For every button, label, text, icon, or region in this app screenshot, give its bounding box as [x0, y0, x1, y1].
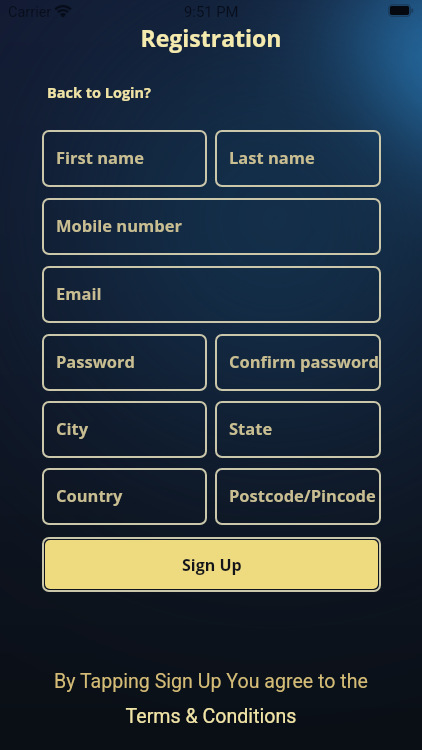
button[interactable]: Sign Up	[45, 540, 378, 589]
other: Wi-Fi	[56, 5, 70, 17]
button[interactable]: Terms & Conditions	[0, 705, 422, 728]
other: Battery full	[388, 4, 416, 17]
staticText: Sign Up	[182, 554, 242, 576]
button[interactable]: Confirm password	[215, 334, 381, 391]
button[interactable]: Country	[42, 468, 207, 525]
button[interactable]: Email	[42, 266, 381, 323]
staticText: Confirm password	[229, 350, 380, 372]
staticText: Postcode/Pincode	[229, 484, 376, 506]
staticText: City	[56, 417, 89, 439]
staticText: Registration	[0, 22, 422, 53]
staticText: Email	[56, 282, 102, 304]
button[interactable]: First name	[42, 130, 207, 187]
button[interactable]: Mobile number	[42, 198, 381, 255]
button[interactable]: Last name	[215, 130, 381, 187]
button[interactable]: City	[42, 401, 207, 458]
staticText: Carrier	[8, 4, 52, 20]
staticText: Country	[56, 484, 123, 506]
staticText: Mobile number	[56, 214, 182, 236]
staticText: State	[229, 417, 273, 439]
staticText: 9:51 PM	[184, 3, 239, 20]
button[interactable]: Postcode/Pincode	[215, 468, 381, 525]
staticText: By Tapping Sign Up You agree to the	[0, 670, 422, 693]
staticText: Terms & Conditions	[0, 705, 422, 728]
button[interactable]: Password	[42, 334, 207, 391]
staticText: Last name	[229, 146, 315, 168]
button[interactable]: State	[215, 401, 381, 458]
staticText: Password	[56, 350, 136, 372]
staticText: Back to Login?	[47, 83, 151, 103]
button[interactable]: Back to Login?	[47, 83, 151, 103]
staticText: First name	[56, 146, 144, 168]
